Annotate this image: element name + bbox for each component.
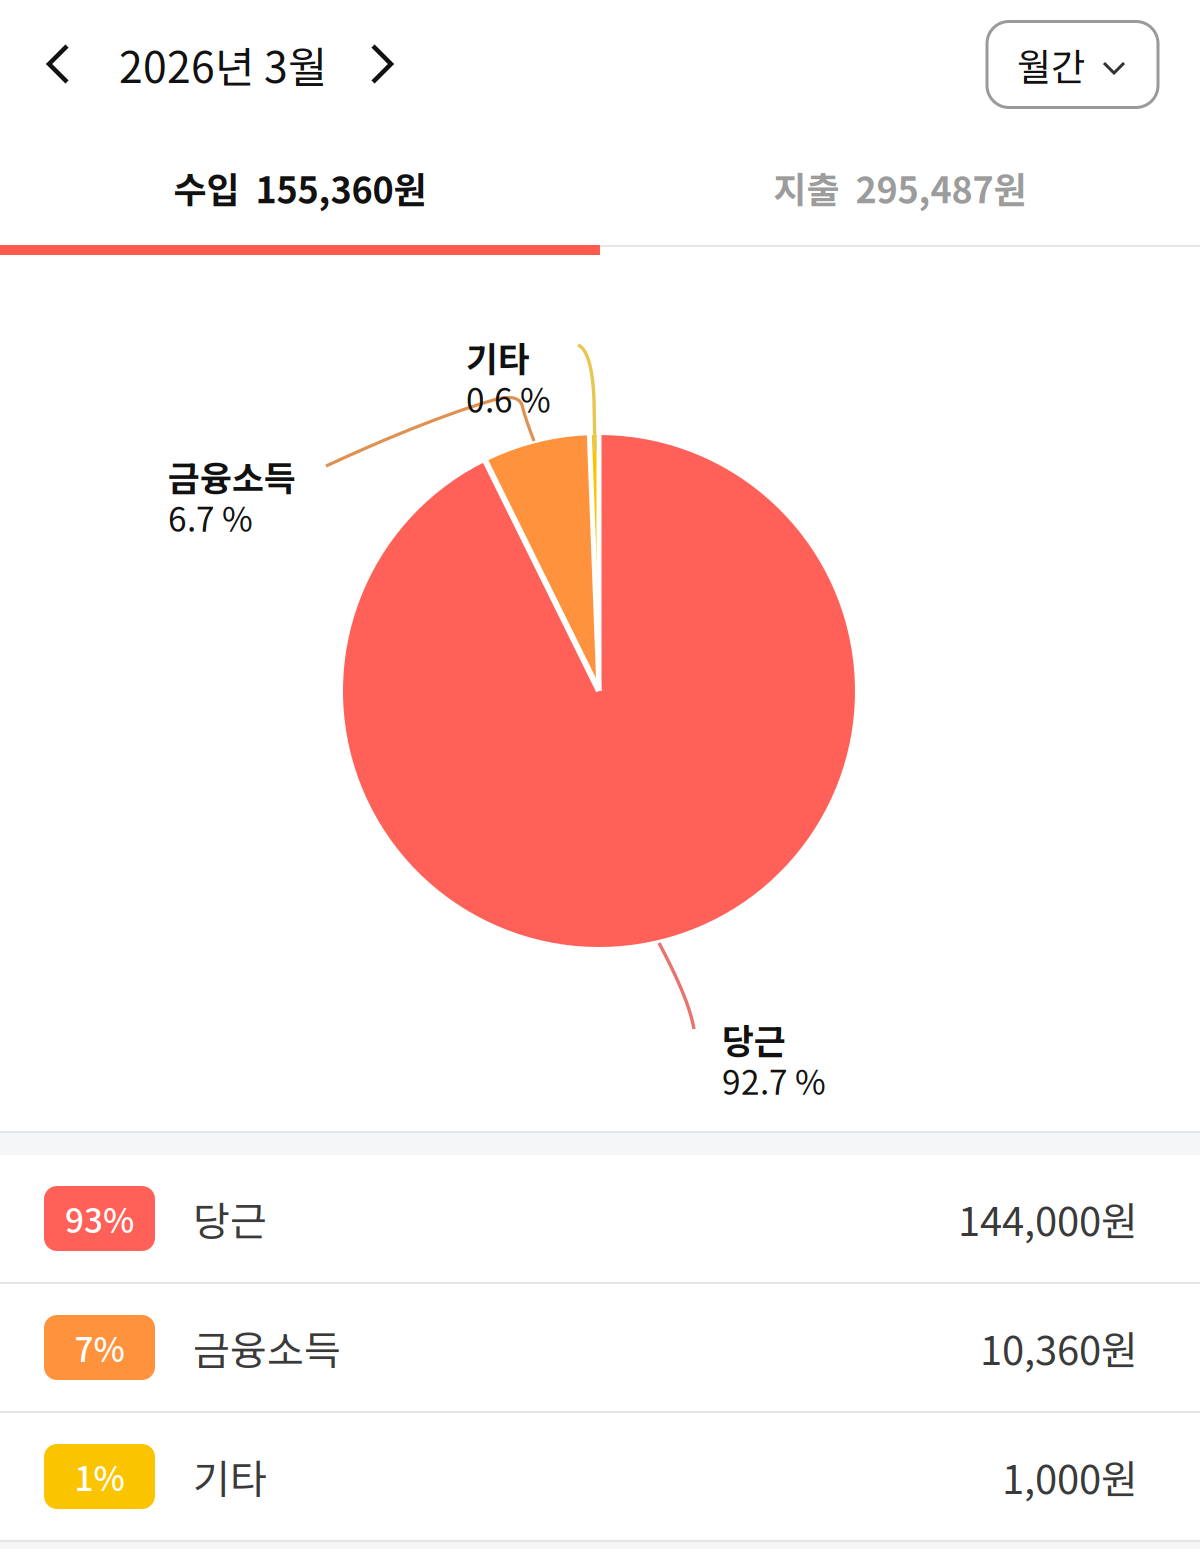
staticText: 당근 [193, 1189, 267, 1247]
staticText: 144,000원 [958, 1189, 1138, 1247]
staticText: 금융소득 [168, 451, 296, 501]
button[interactable]: 93% [0, 1155, 1200, 1282]
button[interactable]: 1% [0, 1413, 1200, 1540]
staticText: 지출 295,487원 [773, 161, 1026, 213]
staticText: 7% [74, 1323, 124, 1372]
staticText: 당근 [722, 1014, 786, 1064]
staticText: 10,360원 [980, 1318, 1138, 1376]
staticText: 92.7 % [722, 1056, 826, 1104]
staticText: 금융소득 [193, 1318, 341, 1376]
button[interactable]: 7% [0, 1284, 1200, 1411]
staticText: 기타 [193, 1447, 267, 1505]
staticText: 1,000원 [1002, 1447, 1138, 1505]
button[interactable]: 수입 155,360원 [0, 130, 600, 245]
staticText: 수입 155,360원 [173, 161, 426, 213]
staticText: 2026년 3월 [119, 34, 327, 95]
button[interactable]: 지출 295,487원 [600, 130, 1200, 245]
staticText: 93% [65, 1194, 134, 1243]
staticText: 0.6 % [466, 374, 551, 422]
staticText: 1% [74, 1452, 124, 1501]
staticText: 월간 [1017, 37, 1085, 92]
button[interactable]: Next month [379, 17, 419, 112]
button[interactable]: 월간 [987, 21, 1158, 107]
button[interactable]: Previous month [32, 17, 90, 112]
staticText: 기타 [466, 332, 530, 382]
button[interactable]: 2026년 3월 [90, 17, 379, 112]
staticText: 6.7 % [168, 493, 253, 541]
